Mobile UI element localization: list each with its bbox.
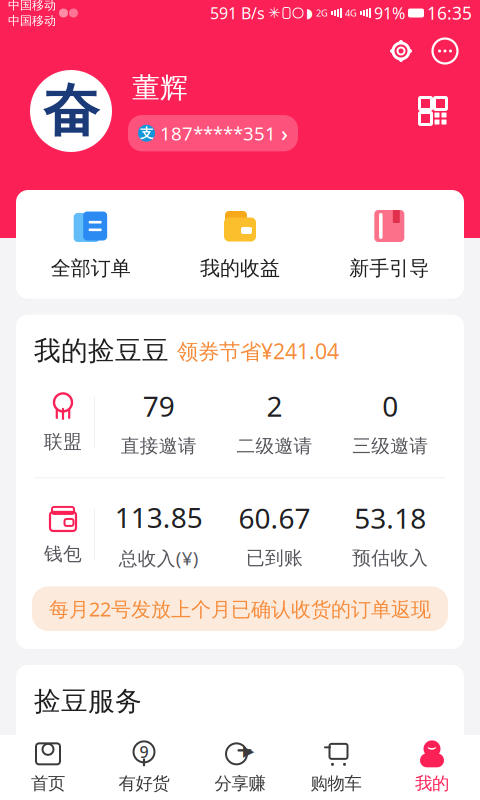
staticText: ⌣	[427, 740, 437, 754]
staticText: 16:35	[427, 1, 472, 24]
staticText: 53.18	[354, 499, 426, 537]
staticText: 79	[143, 387, 175, 424]
button[interactable]: 新手引导	[315, 190, 464, 299]
staticText: 已到账	[246, 546, 303, 569]
staticText: 591 B/s	[210, 2, 265, 24]
button[interactable]: 购物车	[288, 734, 384, 800]
staticText: 领券节省¥241.04	[177, 337, 339, 365]
staticText: 2	[266, 387, 282, 424]
staticText: ✳	[268, 5, 280, 21]
staticText: 购物车	[310, 773, 361, 794]
button[interactable]: ▶	[192, 734, 288, 800]
button[interactable]: 首页	[0, 734, 96, 800]
staticText: 直接邀请	[121, 434, 197, 457]
button[interactable]: My QR code	[410, 79, 456, 143]
staticText: 我的捡豆豆	[34, 335, 169, 367]
button[interactable]: Messages	[426, 34, 464, 68]
button[interactable]: 支	[128, 115, 298, 151]
staticText: 预估收入	[352, 546, 428, 569]
staticText: 捡豆服务	[34, 685, 142, 718]
staticText: 分享赚	[214, 773, 265, 794]
staticText: 二级邀请	[236, 434, 312, 457]
staticText: 113.85	[115, 498, 203, 536]
button[interactable]: 我的收益	[165, 190, 315, 299]
button[interactable]: 9	[96, 734, 192, 800]
button[interactable]: Settings	[382, 34, 420, 68]
staticText: 联盟	[44, 430, 82, 453]
staticText: 2G	[316, 7, 328, 19]
staticText: ›	[281, 119, 288, 147]
staticText: ◗	[306, 5, 313, 20]
staticText: 0	[382, 387, 398, 424]
staticText: 董辉	[132, 71, 188, 105]
staticText: 中国移动	[8, 13, 56, 28]
staticText: 新手引导	[349, 256, 429, 281]
staticText: 钱包	[44, 542, 82, 565]
staticText: 每月22号发放上个月已确认收货的订单返现	[49, 595, 431, 622]
staticText: 我的	[415, 773, 449, 794]
staticText: 9	[139, 741, 148, 762]
staticText: 全部订单	[51, 256, 131, 281]
staticText: 奋	[43, 77, 99, 145]
staticText: 总收入(¥)	[119, 546, 199, 570]
staticText: 支	[140, 125, 153, 141]
staticText: 4G	[345, 7, 357, 19]
staticText: 首页	[31, 773, 65, 794]
staticText: 三级邀请	[352, 434, 428, 457]
staticText: ▶	[243, 742, 254, 759]
staticText: 中国移动	[8, 0, 56, 12]
staticText: 91%	[374, 2, 405, 24]
staticText: 187*****351	[160, 121, 276, 146]
button[interactable]: 全部订单	[16, 190, 165, 299]
staticText: 我的收益	[200, 256, 280, 281]
button[interactable]: ⌣	[384, 734, 480, 800]
staticText: 有好货	[118, 773, 169, 794]
staticText: 60.67	[238, 499, 310, 537]
